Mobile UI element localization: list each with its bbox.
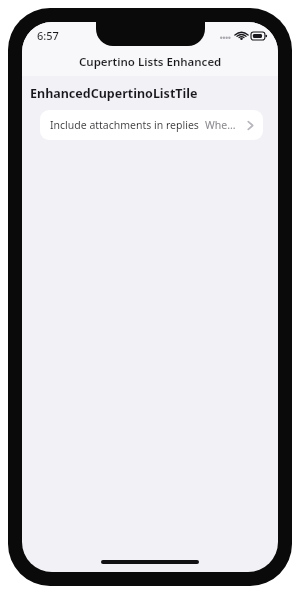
staticText: Whe... <box>205 118 236 132</box>
staticText: EnhancedCupertinoListTile <box>30 85 198 102</box>
staticText: Include attachments in replies <box>50 118 199 132</box>
button[interactable]: Include attachments in replies <box>40 110 263 140</box>
staticText: 6:57 <box>37 28 59 43</box>
staticText: Cupertino Lists Enhanced <box>79 54 222 70</box>
other: Open details <box>247 120 254 131</box>
